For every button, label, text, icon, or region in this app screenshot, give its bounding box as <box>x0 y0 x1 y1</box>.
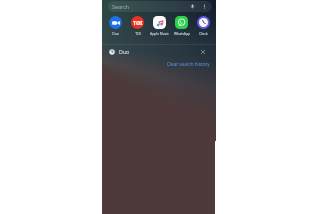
button[interactable]: Clear search history <box>167 61 210 67</box>
button[interactable]: Duo <box>102 45 215 58</box>
staticText: TOI <box>135 31 141 35</box>
staticText: TOI <box>133 19 143 26</box>
staticText: Apple Music <box>150 31 169 35</box>
button[interactable]: Duo <box>105 16 126 35</box>
button[interactable]: Search <box>108 1 212 12</box>
staticText: Clock <box>199 31 208 35</box>
button[interactable]: Apple Music <box>149 16 170 35</box>
button[interactable]: TOI <box>127 16 148 35</box>
button[interactable]: Clock <box>193 16 214 35</box>
button[interactable]: Remove Duo from history <box>199 48 206 55</box>
staticText: Search <box>112 3 130 10</box>
button[interactable]: More options <box>201 3 208 10</box>
staticText: WhatsApp <box>174 31 190 35</box>
staticText: Duo <box>112 31 119 35</box>
button[interactable]: WhatsApp <box>171 16 192 35</box>
staticText: Duo <box>119 48 130 55</box>
button[interactable]: Voice search <box>189 3 196 10</box>
